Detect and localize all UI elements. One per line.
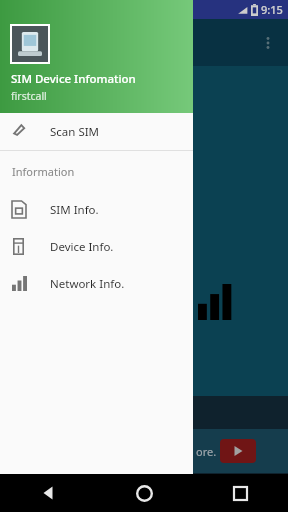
button[interactable]: Recents — [192, 474, 288, 512]
staticText: Device Info. — [50, 239, 114, 255]
button[interactable]: Play video ad — [220, 439, 256, 463]
button[interactable]: SIM Info. — [0, 191, 193, 228]
staticText: 9:15 — [261, 2, 283, 17]
button[interactable]: Device Info. — [0, 228, 193, 265]
button[interactable]: Scan SIM — [0, 113, 193, 150]
button[interactable]: Network Info. — [0, 265, 193, 302]
staticText: Network Info. — [50, 276, 125, 292]
button[interactable]: Home — [96, 474, 192, 512]
staticText: Scan SIM — [50, 124, 100, 140]
button[interactable]: Back — [0, 474, 96, 512]
button[interactable]: More options — [248, 23, 288, 63]
staticText: SIM Info. — [50, 202, 99, 218]
staticText: SIM Device Infomation — [11, 71, 136, 87]
staticText: firstcall — [11, 89, 47, 103]
staticText: ore. — [196, 444, 217, 459]
staticText: Information — [12, 164, 75, 179]
